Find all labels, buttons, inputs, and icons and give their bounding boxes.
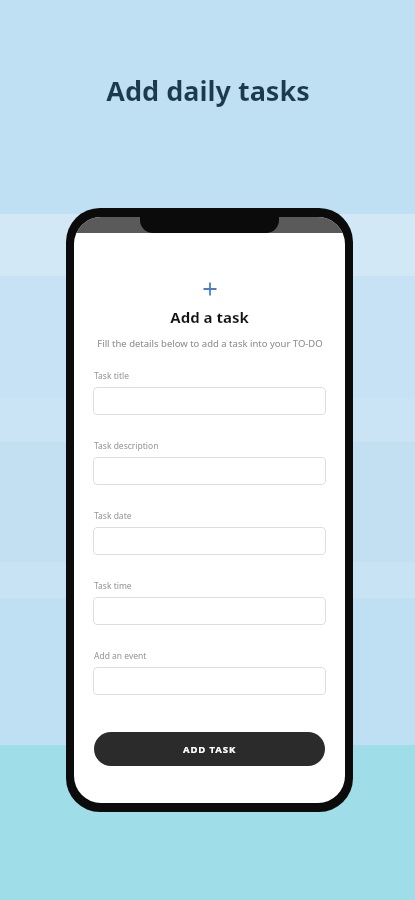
button[interactable] [93, 457, 326, 485]
staticText: Task date [94, 510, 132, 522]
staticText: ADD TASK [183, 743, 237, 756]
staticText: Add a task [170, 307, 249, 327]
staticText: Task title [94, 370, 129, 382]
button[interactable] [93, 597, 326, 625]
button[interactable] [93, 387, 326, 415]
button[interactable]: Add [74, 279, 345, 299]
staticText: Fill the details below to add a task int… [97, 337, 323, 350]
staticText: Add daily tasks [106, 72, 310, 109]
staticText: Task description [94, 440, 159, 452]
staticText: Add an event [94, 650, 147, 662]
button[interactable]: ADD TASK [94, 732, 325, 766]
button[interactable] [93, 667, 326, 695]
button[interactable] [93, 527, 326, 555]
staticText: Task time [94, 580, 132, 592]
